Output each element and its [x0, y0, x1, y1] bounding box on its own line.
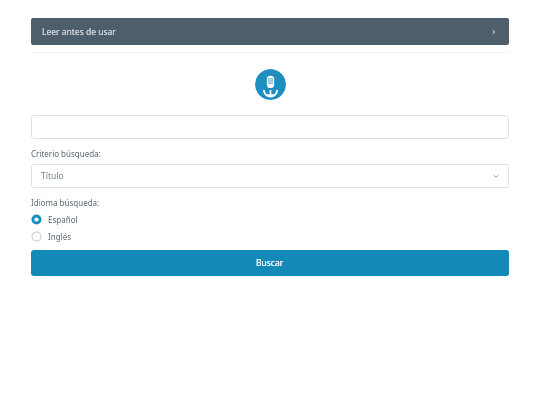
button[interactable]: Título [31, 164, 509, 188]
staticText: Español [48, 214, 78, 225]
staticText: Inglés [48, 231, 71, 242]
staticText: Leer antes de usar [42, 26, 116, 38]
staticText: Título [41, 170, 64, 182]
button[interactable]: Búsqueda por voz [255, 69, 286, 100]
button[interactable]: Leer antes de usar [31, 18, 509, 45]
button[interactable]: Inglés [31, 229, 71, 244]
staticText: Buscar [256, 257, 284, 269]
button[interactable] [31, 115, 509, 139]
button[interactable]: Buscar [31, 250, 509, 276]
staticText: Criterio búsqueda: [31, 148, 101, 159]
button[interactable]: Español [31, 212, 78, 227]
staticText: Idioma búsqueda: [31, 197, 100, 208]
